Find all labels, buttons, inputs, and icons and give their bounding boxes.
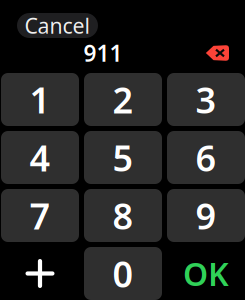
staticText: 2 <box>112 76 133 123</box>
staticText: OK <box>183 252 229 295</box>
staticText: 5 <box>112 134 133 181</box>
staticText: Cancel <box>24 11 90 40</box>
staticText: 9 <box>195 192 216 239</box>
staticText: 911 <box>83 38 122 68</box>
button[interactable]: 3 <box>167 73 245 126</box>
button[interactable]: 6 <box>167 131 245 184</box>
button[interactable]: 0 <box>84 247 162 300</box>
button[interactable]: 5 <box>84 131 162 184</box>
button[interactable]: 9 <box>167 189 245 242</box>
button[interactable]: 4 <box>1 131 79 184</box>
staticText: 8 <box>112 192 133 239</box>
staticText: 1 <box>29 76 50 123</box>
button[interactable]: Cancel <box>17 13 98 38</box>
button[interactable]: OK <box>167 247 245 300</box>
button[interactable]: Delete <box>202 42 232 64</box>
button[interactable]: 1 <box>1 73 79 126</box>
staticText: 0 <box>112 250 133 297</box>
staticText: 3 <box>195 76 216 123</box>
staticText: 7 <box>29 192 50 239</box>
staticText: 4 <box>29 134 50 181</box>
button[interactable]: 8 <box>84 189 162 242</box>
staticText: 6 <box>195 134 216 181</box>
button[interactable]: Plus <box>1 247 79 300</box>
button[interactable]: 7 <box>1 189 79 242</box>
button[interactable]: 2 <box>84 73 162 126</box>
